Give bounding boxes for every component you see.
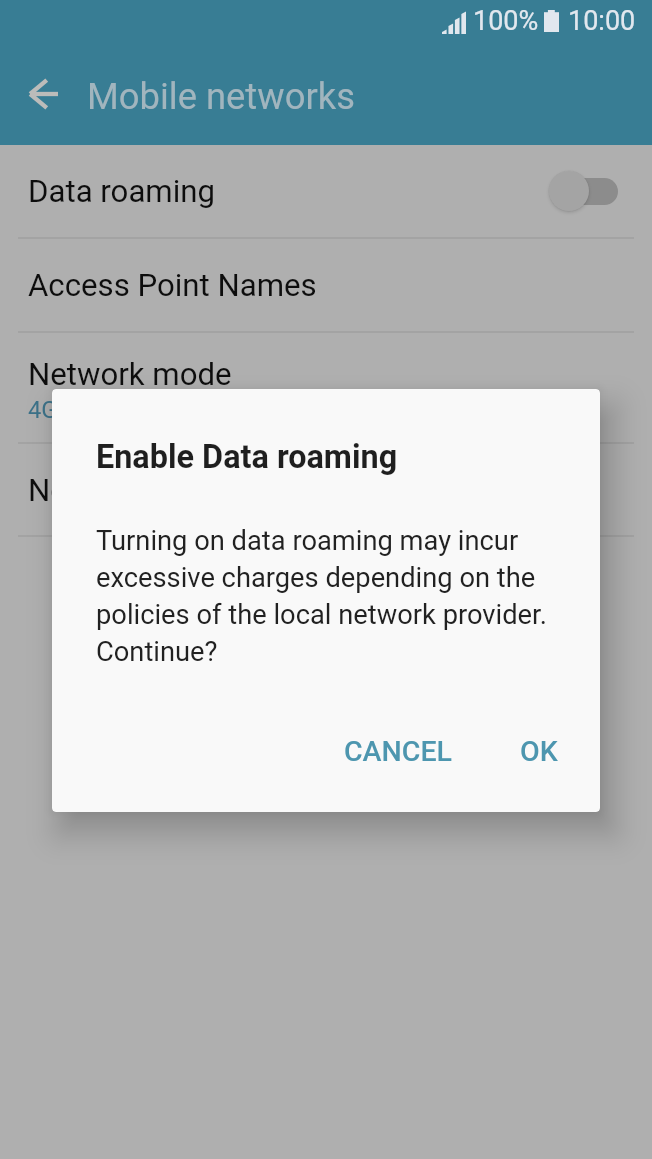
button[interactable]: Navigate up: [0, 46, 88, 145]
staticText: Mobile networks: [87, 75, 355, 118]
staticText: 10:00: [568, 5, 636, 37]
button[interactable]: CANCEL: [322, 721, 474, 782]
button[interactable]: Access Point Names: [0, 239, 652, 331]
staticText: 100%: [473, 5, 539, 37]
staticText: Access Point Names: [28, 267, 317, 304]
staticText: CANCEL: [344, 735, 452, 768]
button[interactable]: Data roaming: [0, 145, 652, 237]
staticText: Data roaming: [28, 173, 216, 210]
button[interactable]: Data roaming toggle: [549, 165, 618, 217]
staticText: OK: [520, 735, 558, 768]
staticText: Turning on data roaming may incur excess…: [96, 525, 566, 668]
staticText: Network mode: [28, 356, 232, 393]
button[interactable]: Network mode: [0, 333, 652, 442]
staticText: Network operators: [28, 472, 286, 509]
button[interactable]: Network operators: [0, 444, 652, 535]
staticText: 4G: [28, 396, 58, 424]
staticText: Enable Data roaming: [96, 438, 398, 476]
button[interactable]: OK: [498, 721, 580, 782]
